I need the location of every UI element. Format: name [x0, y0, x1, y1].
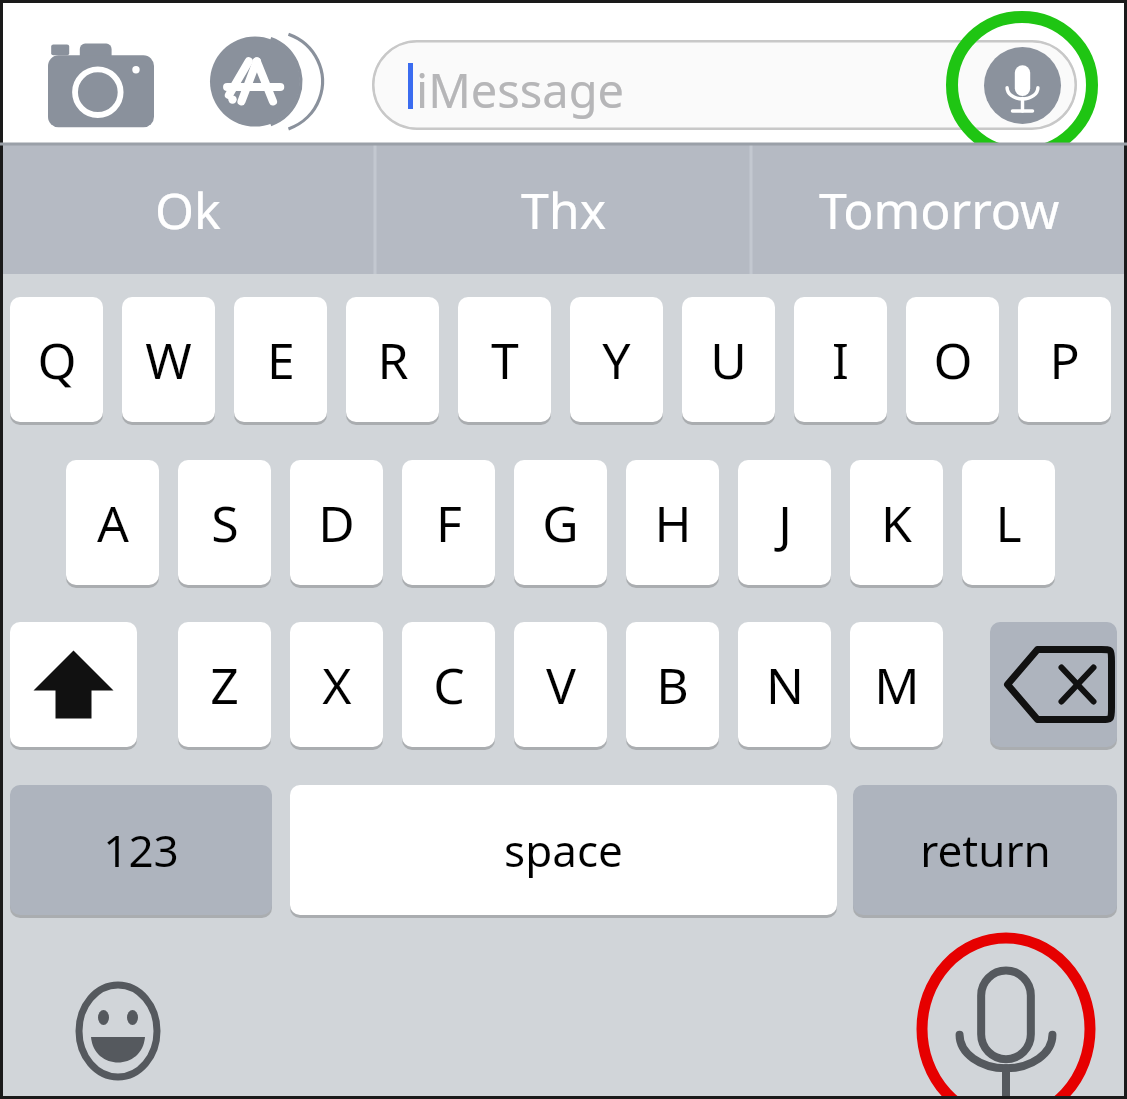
button[interactable]: Y [570, 297, 663, 422]
button[interactable]: Dictation [960, 977, 1052, 1082]
staticText: Ok [155, 176, 221, 244]
button[interactable]: U [682, 297, 775, 422]
staticText: return [920, 820, 1051, 880]
staticText: B [656, 651, 689, 719]
button[interactable]: H [626, 460, 719, 585]
button[interactable]: Q [10, 297, 103, 422]
button[interactable]: Tomorrow [752, 145, 1127, 274]
staticText: V [546, 651, 576, 719]
staticText: O [933, 326, 973, 394]
button[interactable]: Shift [10, 622, 137, 747]
staticText: Thx [521, 176, 607, 244]
staticText: 123 [103, 820, 179, 880]
button[interactable]: B [626, 622, 719, 747]
button[interactable]: Dictate [984, 47, 1061, 124]
staticText: D [318, 489, 355, 557]
button[interactable]: I [794, 297, 887, 422]
staticText: N [766, 651, 804, 719]
button[interactable]: Thx [377, 145, 750, 274]
button[interactable]: 123 [10, 785, 272, 915]
button[interactable]: space [290, 785, 837, 915]
staticText: K [881, 489, 912, 557]
staticText: Q [37, 326, 77, 394]
button[interactable]: P [1018, 297, 1111, 422]
button[interactable]: Backspace [990, 622, 1117, 747]
staticText: T [491, 326, 519, 394]
staticText: U [710, 326, 747, 394]
staticText: A [97, 489, 129, 557]
staticText: R [377, 326, 409, 394]
button[interactable]: return [853, 785, 1117, 915]
button[interactable]: Camera [48, 40, 154, 130]
button[interactable]: C [402, 622, 495, 747]
button[interactable]: S [178, 460, 271, 585]
button[interactable]: G [514, 460, 607, 585]
button[interactable]: M [850, 622, 943, 747]
button[interactable]: Ok [0, 145, 375, 274]
staticText: Tomorrow [819, 176, 1060, 244]
button[interactable]: V [514, 622, 607, 747]
button[interactable]: F [402, 460, 495, 585]
staticText: I [832, 326, 849, 394]
button[interactable]: E [234, 297, 327, 422]
staticText: M [874, 651, 920, 719]
staticText: S [211, 489, 239, 557]
staticText: H [654, 489, 692, 557]
staticText: Z [210, 651, 239, 719]
button[interactable]: W [122, 297, 215, 422]
button[interactable]: R [346, 297, 439, 422]
button[interactable]: N [738, 622, 831, 747]
button[interactable]: D [290, 460, 383, 585]
button[interactable]: iMessage [372, 40, 1077, 130]
button[interactable]: J [738, 460, 831, 585]
button[interactable]: L [962, 460, 1055, 585]
button[interactable]: Emoji [80, 985, 156, 1077]
button[interactable]: App Store [210, 36, 310, 131]
staticText: E [267, 326, 295, 394]
button[interactable]: X [290, 622, 383, 747]
staticText: iMessage [416, 58, 625, 122]
button[interactable]: Z [178, 622, 271, 747]
staticText: W [145, 326, 192, 394]
button[interactable]: K [850, 460, 943, 585]
staticText: F [436, 489, 462, 557]
staticText: J [778, 489, 792, 557]
staticText: space [504, 820, 623, 880]
button[interactable]: T [458, 297, 551, 422]
staticText: L [995, 489, 1022, 557]
staticText: X [322, 651, 352, 719]
staticText: C [433, 651, 465, 719]
staticText: Y [602, 326, 631, 394]
staticText: G [542, 489, 579, 557]
staticText: P [1049, 326, 1080, 394]
button[interactable]: O [906, 297, 999, 422]
button[interactable]: A [66, 460, 159, 585]
